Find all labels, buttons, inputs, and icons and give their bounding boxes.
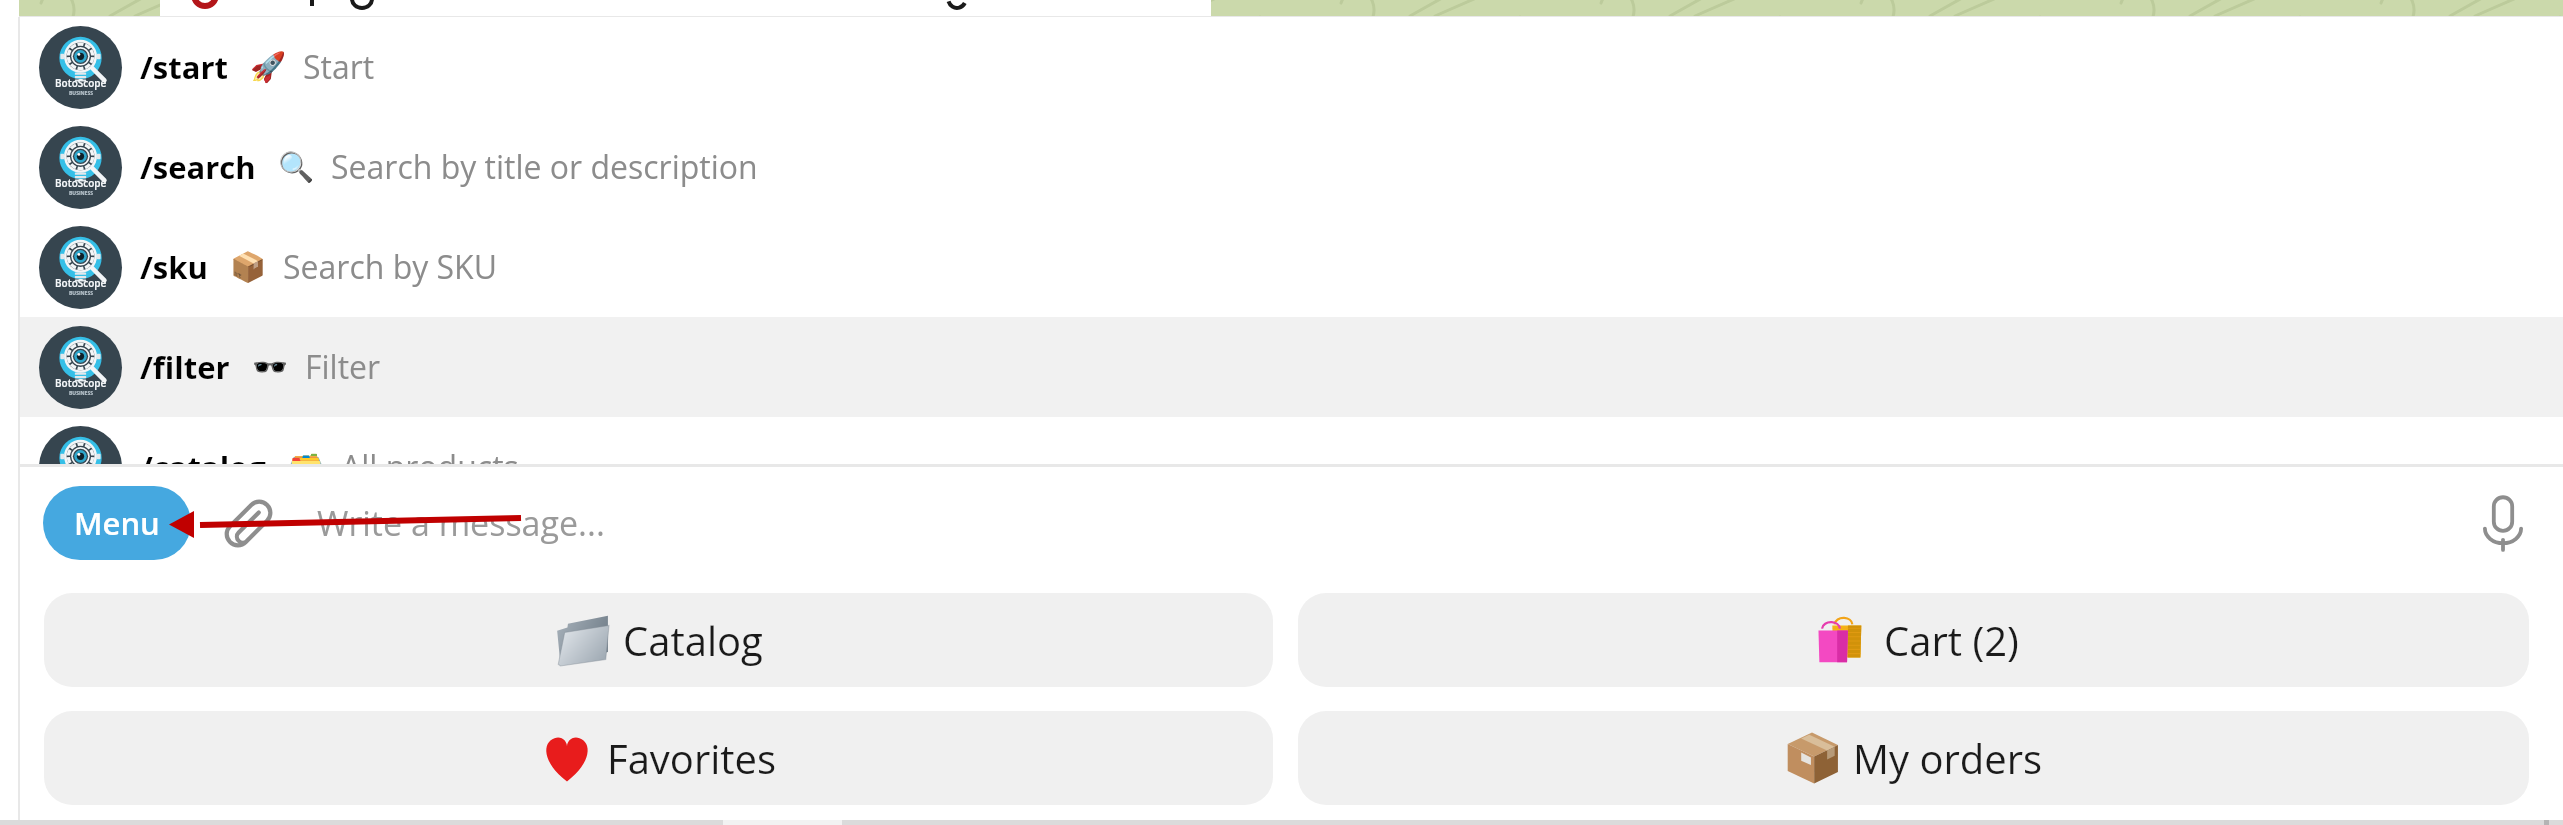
button[interactable]: BotoScope bbox=[20, 217, 2563, 317]
staticText: Menu bbox=[74, 502, 160, 544]
staticText: All products bbox=[341, 445, 519, 464]
staticText: Favorites bbox=[607, 731, 777, 785]
staticText: BUSINESS bbox=[69, 290, 93, 297]
staticText: Search by title or description bbox=[331, 145, 758, 189]
staticText: /start bbox=[140, 46, 228, 88]
staticText: Cart (2) bbox=[1884, 613, 2019, 667]
staticText: BotoScope bbox=[55, 276, 107, 290]
button[interactable]: BotoScope bbox=[20, 117, 2563, 217]
staticText: BotoScope bbox=[55, 76, 107, 90]
button[interactable]: Catalog bbox=[44, 593, 1273, 687]
staticText: Catalog bbox=[623, 613, 763, 667]
button[interactable]: Record voice message bbox=[2463, 486, 2543, 560]
staticText: Search by SKU bbox=[283, 245, 498, 289]
button[interactable]: My orders bbox=[1298, 711, 2529, 805]
button[interactable]: Favorites bbox=[44, 711, 1273, 805]
button[interactable]: Cart (2) bbox=[1298, 593, 2529, 687]
staticText: 🔍 bbox=[278, 150, 315, 184]
staticText: /search bbox=[140, 146, 256, 188]
button[interactable]: BotoScope bbox=[20, 417, 2563, 464]
staticText: BUSINESS bbox=[69, 190, 93, 197]
staticText: 🕶️ bbox=[252, 350, 289, 384]
staticText: Write a message... bbox=[317, 500, 605, 546]
button[interactable]: BotoScope bbox=[20, 317, 2563, 417]
staticText: BUSINESS bbox=[69, 390, 93, 397]
staticText: 🗃️ bbox=[288, 450, 325, 464]
staticText: /filter bbox=[140, 346, 230, 388]
staticText: BotoScope bbox=[55, 376, 107, 390]
button[interactable]: Menu bbox=[43, 486, 191, 560]
staticText: 🚀 bbox=[250, 50, 287, 84]
staticText: Start bbox=[303, 45, 375, 89]
staticText: My orders bbox=[1853, 731, 2043, 785]
staticText: Filter bbox=[305, 345, 381, 389]
button[interactable]: BotoScope bbox=[20, 17, 2563, 117]
button[interactable]: Attach file bbox=[206, 486, 292, 560]
staticText: BUSINESS bbox=[69, 90, 93, 97]
staticText: BotoScope bbox=[55, 176, 107, 190]
staticText: 📦 bbox=[230, 250, 267, 284]
staticText: /sku bbox=[140, 246, 208, 288]
staticText: /catalog bbox=[140, 446, 266, 464]
